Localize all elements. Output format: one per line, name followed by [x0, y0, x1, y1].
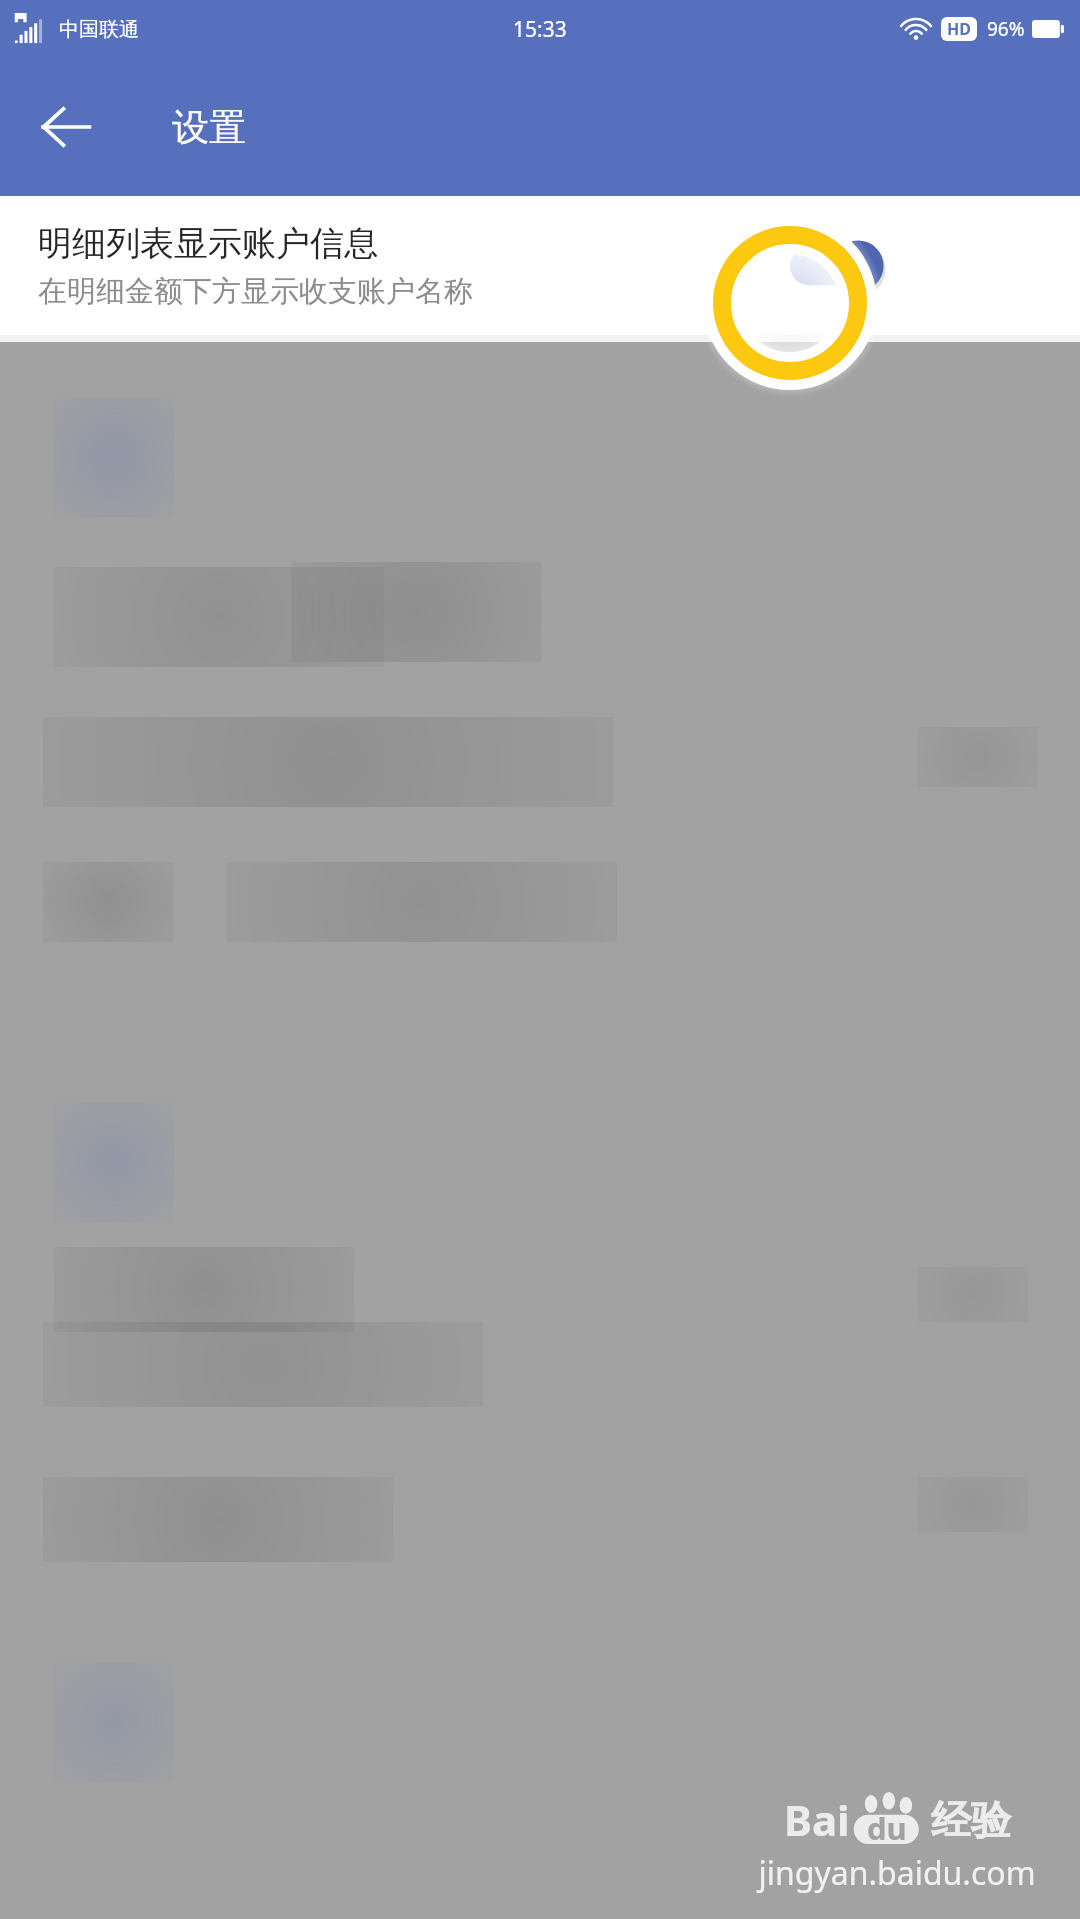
staticText: 在明细金额下方显示收支账户名称	[38, 273, 473, 310]
button[interactable]: Show account info, on	[790, 234, 882, 298]
staticText: HD	[947, 18, 971, 40]
staticText: Bai	[784, 1791, 850, 1848]
staticText: 15:33	[513, 15, 567, 44]
button[interactable]: Back	[26, 87, 106, 167]
staticText: 设置	[172, 104, 246, 151]
staticText: 96%	[987, 16, 1025, 42]
staticText: jingyan.baidu.com	[758, 1851, 1036, 1895]
staticText: 中国联通	[59, 17, 139, 42]
staticText: 经验	[931, 1795, 1011, 1845]
staticText: 明细列表显示账户信息	[38, 222, 378, 265]
staticText: du	[867, 1807, 907, 1849]
button[interactable]: 明细列表显示账户信息	[0, 196, 1080, 335]
